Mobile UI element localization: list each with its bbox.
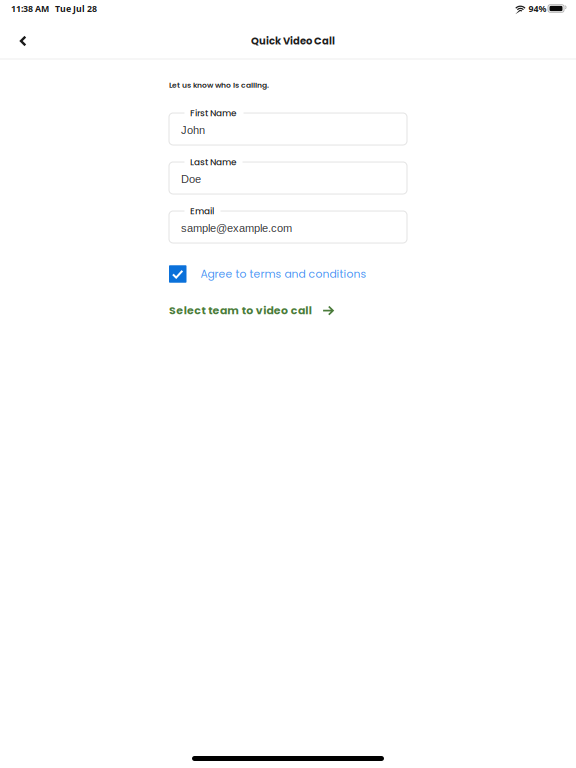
button[interactable]: Select team to video call (169, 301, 407, 319)
button[interactable]: Agree to terms and conditions (169, 264, 407, 284)
staticText: Agree to terms and conditions (200, 266, 366, 281)
staticText: Let us know who is calling. (169, 80, 269, 90)
staticText: First Name (190, 107, 237, 119)
staticText: 94% (528, 2, 546, 14)
staticText: John (181, 124, 205, 136)
button[interactable]: Back (7, 25, 39, 57)
staticText: Email (190, 205, 214, 217)
staticText: Quick Video Call (251, 34, 335, 48)
staticText: Last Name (190, 156, 237, 168)
staticText: sample@example.com (181, 222, 292, 234)
staticText: 11:38 AM (11, 2, 49, 14)
staticText: Doe (181, 173, 201, 185)
staticText: Tue Jul 28 (55, 2, 97, 14)
staticText: Select team to video call (169, 303, 312, 318)
